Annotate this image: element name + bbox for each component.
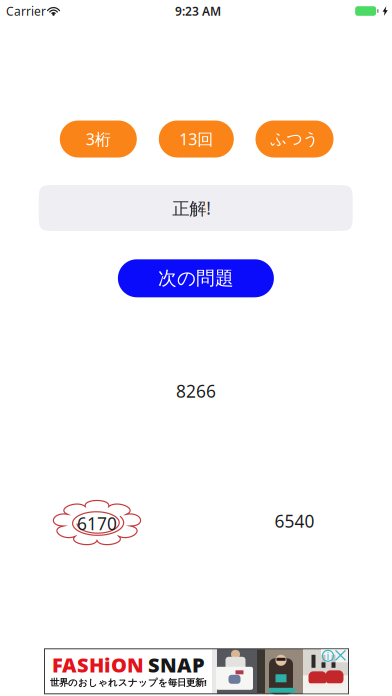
staticText: SNAP	[148, 651, 205, 678]
staticText: i	[326, 649, 329, 663]
staticText: 3桁	[86, 128, 111, 150]
staticText: 世界のおしゃれスナップを毎日更新!	[50, 676, 207, 688]
button[interactable]: ふつう	[255, 120, 333, 157]
staticText: 13回	[179, 128, 213, 150]
staticText: 正解!	[172, 196, 211, 219]
staticText: 6170	[77, 512, 117, 535]
button[interactable]: 次の問題	[118, 259, 274, 297]
staticText: ふつう	[270, 129, 318, 149]
button[interactable]: FASHiON	[44, 648, 349, 694]
staticText: 8266	[176, 379, 216, 402]
staticText: Carrier	[6, 3, 46, 19]
staticText: FASHiON	[52, 651, 144, 678]
button[interactable]: 3桁	[60, 120, 137, 157]
staticText: 6540	[274, 509, 314, 532]
button[interactable]: 13回	[159, 120, 234, 157]
staticText: 次の問題	[158, 267, 234, 290]
staticText: 9:23 AM	[175, 3, 221, 19]
